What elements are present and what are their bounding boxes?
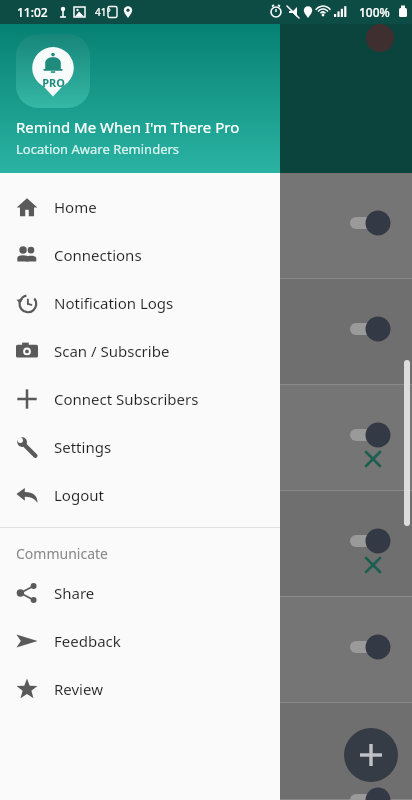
staticText: 41° bbox=[95, 5, 111, 19]
staticText: 58268m bbox=[84, 497, 138, 516]
staticText: 100% bbox=[359, 4, 390, 20]
staticText: Active bbox=[16, 213, 59, 233]
staticText: PRO bbox=[42, 75, 65, 90]
staticText: 29m bbox=[84, 285, 114, 304]
button[interactable]: Scan / Subscribe bbox=[0, 327, 280, 375]
staticText: Active bbox=[16, 531, 59, 551]
staticText: Active bbox=[16, 637, 59, 657]
button[interactable]: distance bbox=[0, 491, 412, 597]
button[interactable]: distance bbox=[0, 279, 412, 385]
button[interactable]: Share bbox=[0, 569, 280, 617]
button[interactable]: Feedback bbox=[0, 617, 280, 665]
staticText: Connect Subscribers bbox=[54, 389, 199, 409]
staticText: Review bbox=[54, 679, 103, 699]
staticText: Feedback bbox=[54, 631, 121, 651]
staticText: Connections bbox=[54, 245, 142, 265]
button[interactable]: distance bbox=[0, 173, 412, 279]
button[interactable]: Connections bbox=[0, 231, 280, 279]
staticText: Location Aware Reminders bbox=[16, 140, 180, 158]
button[interactable]: Home bbox=[0, 183, 280, 231]
button[interactable]: distance bbox=[0, 597, 412, 703]
button[interactable]: distance bbox=[0, 703, 412, 800]
button[interactable]: Notification Logs bbox=[0, 279, 280, 327]
staticText: distance bbox=[16, 391, 72, 410]
button[interactable]: distance bbox=[0, 385, 412, 491]
staticText: Home bbox=[54, 197, 97, 217]
button[interactable]: Logout bbox=[0, 471, 280, 519]
button[interactable]: Review bbox=[0, 665, 280, 713]
button[interactable]: Add reminder bbox=[344, 728, 398, 782]
staticText: 58249m bbox=[84, 391, 138, 410]
staticText: 11:02 bbox=[17, 4, 48, 20]
staticText: distance bbox=[16, 285, 72, 304]
staticText: Active bbox=[16, 425, 59, 445]
staticText: Scan / Subscribe bbox=[54, 341, 170, 361]
staticText: Notification Logs bbox=[54, 293, 174, 313]
staticText: Settings bbox=[54, 437, 112, 457]
staticText: Communicate bbox=[16, 544, 108, 563]
staticText: Share bbox=[54, 583, 95, 603]
staticText: Remind Me When I'm There Pro bbox=[16, 117, 240, 137]
button[interactable]: Connect Subscribers bbox=[0, 375, 280, 423]
staticText: distance bbox=[16, 497, 72, 516]
staticText: Logout bbox=[54, 485, 104, 505]
button[interactable]: Settings bbox=[0, 423, 280, 471]
